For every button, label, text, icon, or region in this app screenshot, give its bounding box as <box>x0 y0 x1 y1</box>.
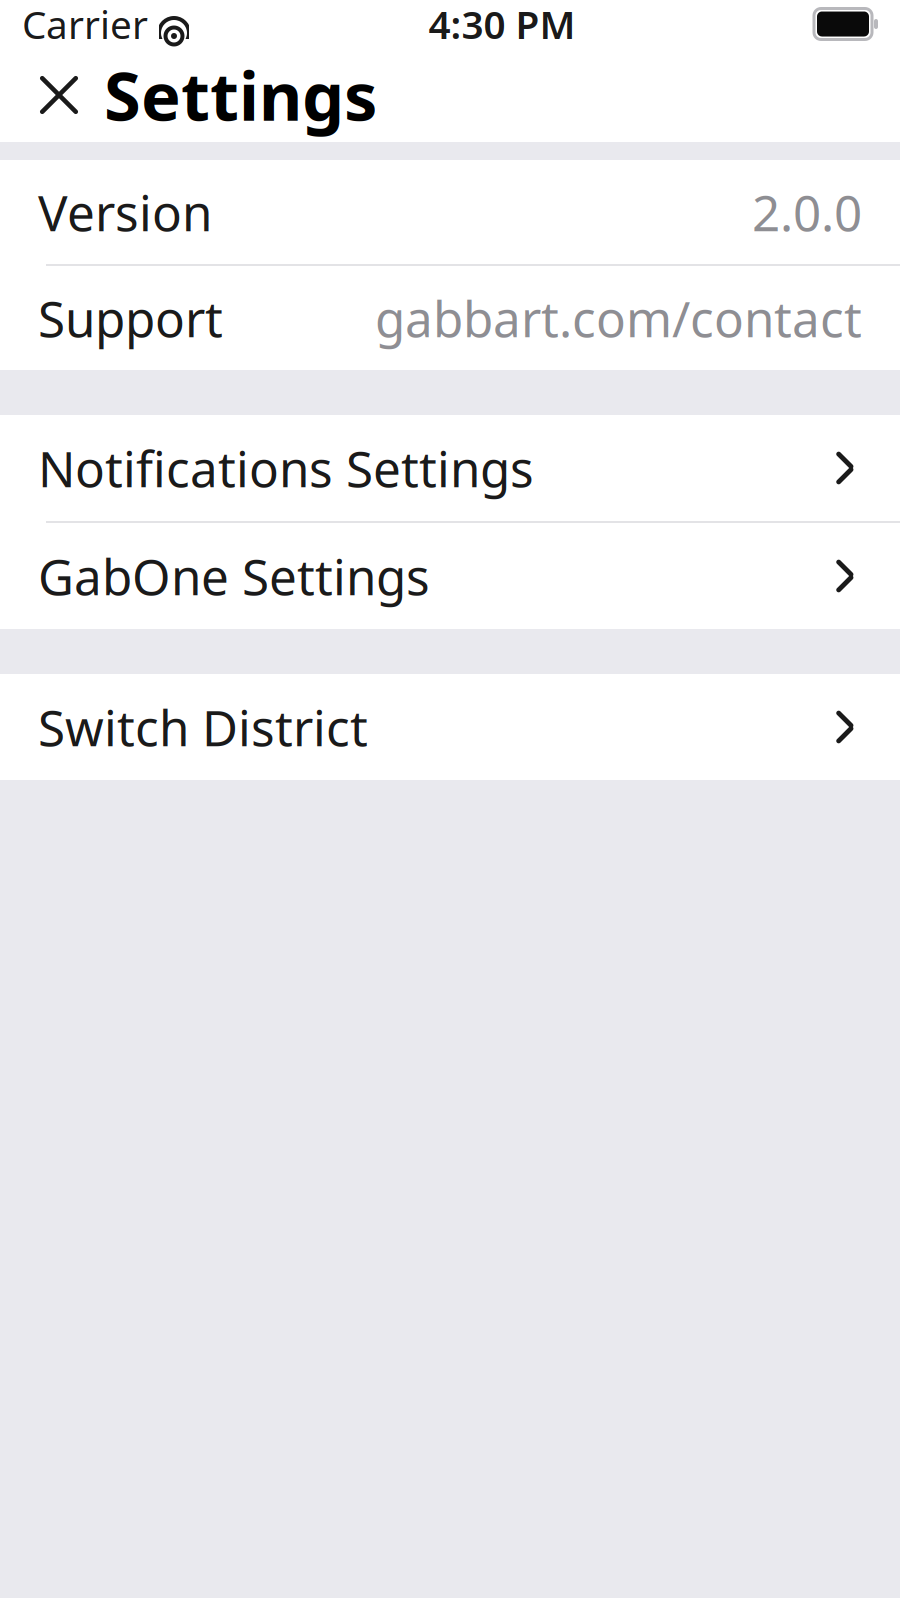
button[interactable]: Switch District <box>0 674 900 780</box>
staticText: Switch District <box>38 694 368 760</box>
staticText: gabbart.com/contact <box>375 285 862 351</box>
staticText: 2.0.0 <box>752 179 862 245</box>
button[interactable]: GabOne Settings <box>0 523 900 629</box>
staticText: Notifications Settings <box>38 435 534 501</box>
staticText: 4:30 PM <box>428 0 575 50</box>
button[interactable]: Notifications Settings <box>0 415 900 521</box>
staticText: Support <box>38 285 223 351</box>
staticText: Settings <box>104 51 377 139</box>
staticText: Version <box>38 179 212 245</box>
button[interactable]: Close <box>32 68 86 122</box>
staticText: GabOne Settings <box>38 543 430 609</box>
staticText: Carrier <box>22 0 148 50</box>
